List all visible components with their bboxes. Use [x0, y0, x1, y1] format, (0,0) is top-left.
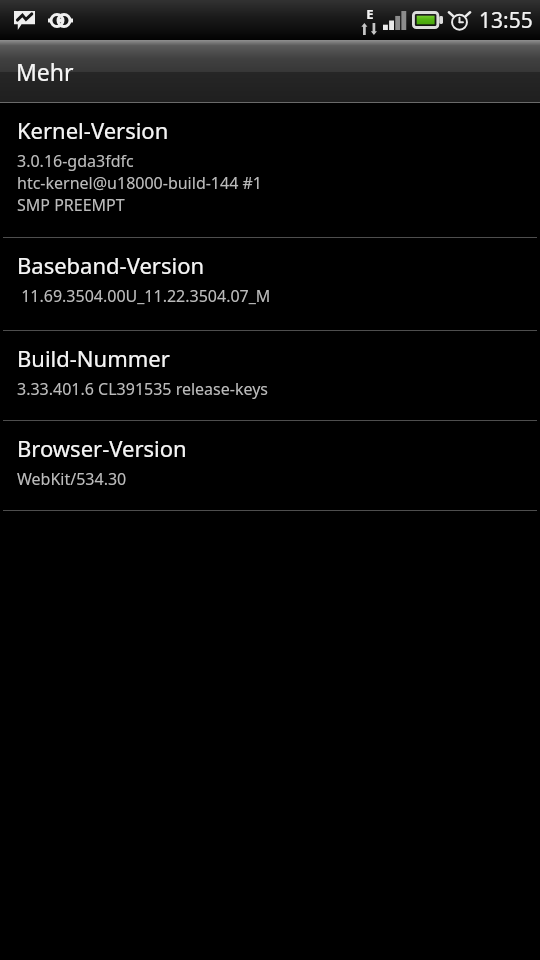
staticText: E [366, 5, 374, 23]
staticText: Browser-Version [17, 433, 187, 463]
staticText: Kernel-Version [17, 115, 169, 145]
staticText: Mehr [16, 56, 74, 87]
staticText: htc-kernel@u18000-build-144 #1 [17, 172, 262, 194]
button[interactable]: Baseband-Version [0, 238, 540, 331]
staticText: SMP PREEMPT [17, 194, 125, 216]
staticText: Baseband-Version [17, 250, 205, 280]
staticText: 3.0.16-gda3fdfc [17, 150, 134, 172]
staticText: WebKit/534.30 [17, 468, 127, 490]
staticText: 13:55 [479, 6, 533, 35]
staticText: 11.69.3504.00U_11.22.3504.07_M [17, 285, 271, 307]
button[interactable]: Kernel-Version [0, 103, 540, 238]
other: Messages [14, 11, 35, 30]
other: Battery [412, 11, 443, 29]
staticText: Build-Nummer [17, 343, 170, 373]
other: Alarm set [449, 10, 470, 31]
other: Signal strength [383, 11, 406, 30]
other: Connected [48, 13, 73, 28]
button[interactable]: Build-Nummer [0, 331, 540, 421]
button[interactable]: Browser-Version [0, 421, 540, 511]
staticText: 3.33.401.6 CL391535 release-keys [17, 378, 269, 400]
